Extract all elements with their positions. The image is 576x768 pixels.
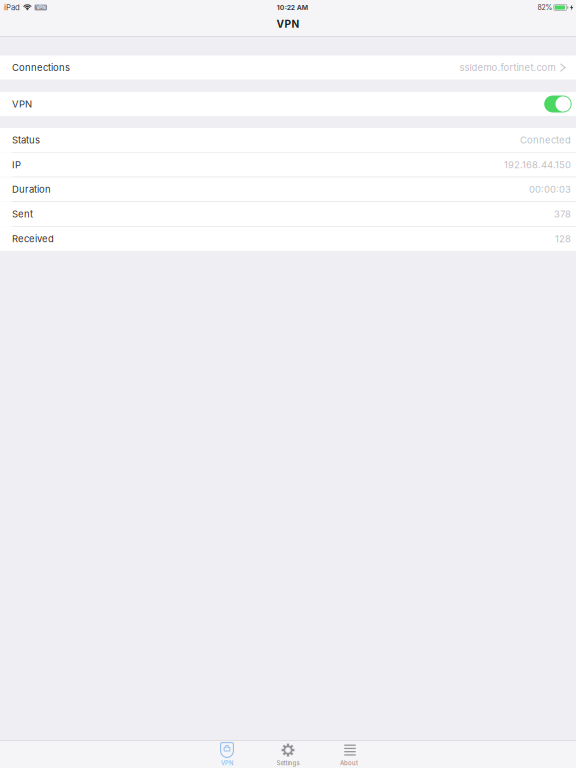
staticText: Duration [12,184,51,195]
staticText: 82% [537,3,552,12]
staticText: Settings [276,759,299,767]
staticText: Connected [520,134,571,146]
staticText: Sent [12,208,33,220]
staticText: 378 [554,208,571,220]
staticText: 00:00:03 [529,184,571,195]
button[interactable]: Settings [257,741,318,767]
staticText: Status [12,134,40,146]
staticText: VPN [12,98,32,110]
staticText: iPad [4,3,20,12]
staticText: Received [12,233,54,245]
staticText: 192.168.44.150 [504,159,571,170]
button[interactable]: VPN [196,741,257,767]
staticText: 10:22 AM [277,3,308,12]
button[interactable]: VPN on [544,95,572,112]
staticText: IP [12,159,21,170]
button[interactable]: Connections [0,55,576,80]
button[interactable]: About [318,741,379,767]
staticText: VPN [221,759,233,767]
staticText: VPN [276,18,299,30]
staticText: VPN [36,5,45,10]
staticText: ssldemo.fortinet.com [459,62,555,73]
staticText: 128 [555,233,571,245]
staticText: Connections [12,62,70,73]
staticText: About [340,759,358,767]
